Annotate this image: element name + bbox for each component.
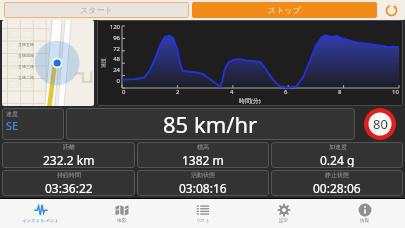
button[interactable]: Map [2, 20, 94, 106]
staticText: 地図 [117, 218, 126, 224]
staticText: 時間(分) [239, 97, 261, 105]
button[interactable]: 設定 [243, 199, 324, 228]
staticText: 8 [338, 88, 342, 96]
staticText: リスト [196, 218, 210, 224]
button[interactable]: 速度 [2, 108, 64, 140]
staticText: 4 [230, 88, 234, 96]
staticText: ストップ [268, 5, 301, 15]
button[interactable]: ストップ [192, 2, 377, 18]
staticText: 立徳二路 [18, 75, 34, 80]
staticText: 1382 m [182, 152, 224, 168]
staticText: 85 km/hr [163, 109, 258, 139]
staticText: 静止状態 [325, 171, 349, 179]
staticText: 96 [107, 34, 120, 42]
button[interactable]: Speed limit 80 [357, 108, 403, 140]
staticText: 0.24 g [320, 152, 355, 168]
staticText: スタート [80, 5, 113, 15]
button[interactable]: 距離 [2, 142, 135, 168]
staticText: 距離 [63, 143, 75, 151]
staticText: 80 [373, 115, 388, 133]
staticText: インストルメント [22, 218, 59, 224]
staticText: 立徳四路 [18, 53, 34, 58]
staticText: 0 [107, 77, 120, 85]
button[interactable]: インストルメント [0, 199, 81, 228]
button[interactable]: 持続時間 [2, 170, 135, 196]
button[interactable]: 加速度 [271, 142, 403, 168]
staticText: 24 [107, 66, 120, 74]
staticText: 速度(km/hr) [100, 58, 106, 68]
staticText: SE [6, 118, 19, 133]
staticText: 232.2 km [43, 152, 95, 168]
staticText: 情報 [360, 218, 369, 224]
button[interactable]: 静止状態 [271, 170, 403, 196]
staticText: 0 [122, 88, 126, 96]
staticText: 速度 [6, 110, 18, 118]
staticText: 標高 [197, 143, 209, 151]
button[interactable]: Speed chart [97, 20, 403, 106]
staticText: 10 [392, 88, 399, 96]
staticText: 00:28:06 [313, 180, 361, 196]
staticText: 立徳五路 [18, 42, 34, 47]
staticText: 03:36:22 [45, 180, 93, 196]
staticText: 03:08:16 [179, 180, 227, 196]
staticText: 120 [107, 23, 120, 31]
staticText: 活動状態 [191, 171, 215, 179]
staticText: 立徳三路 [18, 64, 34, 69]
staticText: 2 [176, 88, 180, 96]
staticText: 設定 [279, 218, 288, 224]
staticText: 持続時間 [57, 171, 81, 179]
staticText: 72 [107, 45, 120, 53]
staticText: 6 [284, 88, 288, 96]
button[interactable]: リスト [162, 199, 243, 228]
button[interactable]: 85 km/hr [66, 108, 355, 140]
button[interactable]: スタート [4, 2, 189, 18]
staticText: 48 [107, 55, 120, 63]
button[interactable]: 地図 [81, 199, 162, 228]
button[interactable]: 活動状態 [137, 170, 269, 196]
staticText: 加速度 [329, 143, 347, 151]
button[interactable]: 標高 [137, 142, 269, 168]
button[interactable]: Refresh [381, 2, 401, 18]
button[interactable]: 情報 [324, 199, 405, 228]
